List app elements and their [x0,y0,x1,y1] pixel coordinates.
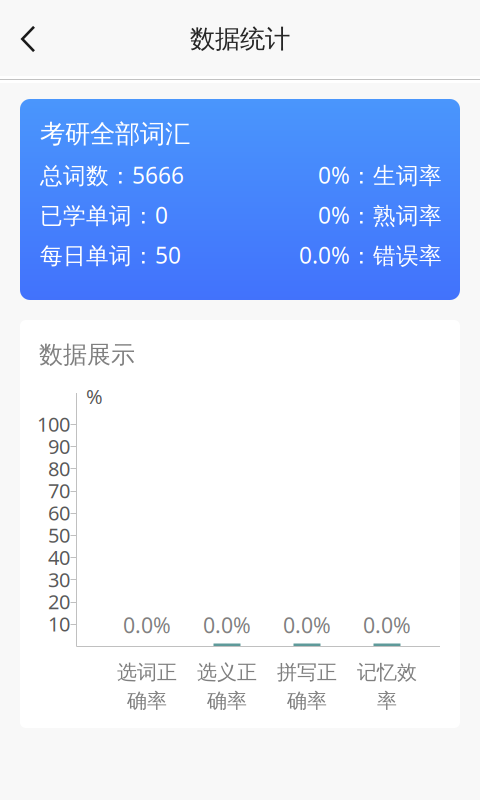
staticText: 记忆效 [357,660,417,685]
staticText: 40 [48,544,70,570]
staticText: 0%：熟词率 [318,200,442,230]
staticText: 100 [37,411,70,437]
staticText: 数据展示 [39,340,135,369]
staticText: 确率 [127,689,167,713]
staticText: 确率 [287,689,327,713]
staticText: 率 [377,689,397,713]
staticText: 0.0% [363,611,411,639]
staticText: 0.0% [203,611,251,639]
staticText: 数据统计 [190,23,290,54]
staticText: 60 [48,499,70,526]
staticText: 每日单词：50 [40,240,181,270]
staticText: 0.0% [283,611,331,639]
staticText: 10 [48,610,70,637]
staticText: 0%：生词率 [318,160,442,190]
staticText: 拼写正 [277,660,337,685]
staticText: 30 [48,566,70,593]
staticText: 50 [48,522,70,548]
staticText: % [86,383,103,410]
staticText: 0.0%：错误率 [299,240,442,270]
staticText: 总词数：5666 [40,160,184,190]
staticText: 确率 [207,689,247,713]
staticText: 70 [48,477,70,504]
staticText: 已学单词：0 [40,200,168,230]
staticText: 0.0% [123,611,171,639]
staticText: 选义正 [197,660,257,685]
staticText: 80 [48,455,70,482]
staticText: 20 [48,588,70,615]
staticText: 考研全部词汇 [40,118,190,149]
button[interactable]: Back [0,0,64,78]
staticText: 选词正 [117,660,177,685]
staticText: 90 [48,433,70,459]
